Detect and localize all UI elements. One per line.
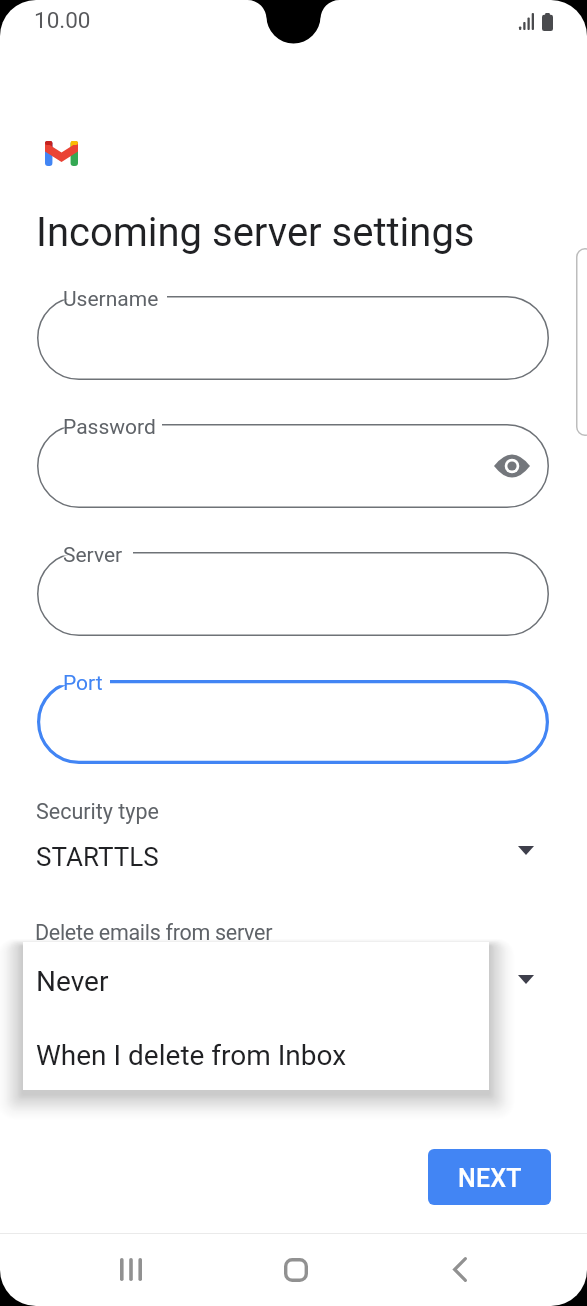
button[interactable]: When I delete from Inbox [23,1016,489,1090]
staticText: Username [63,287,159,312]
staticText: NEXT [458,1164,522,1193]
staticText: Never [36,965,109,998]
button[interactable]: NEXT [428,1149,551,1205]
staticText: Security type [36,799,160,824]
button[interactable]: Username [37,296,549,380]
button[interactable]: Recent apps [96,1233,166,1306]
staticText: Delete emails from server [35,920,273,945]
button[interactable]: Back [425,1233,495,1306]
button[interactable] [0,955,587,1007]
staticText: When I delete from Inbox [36,1039,347,1072]
staticText: Server [63,543,123,568]
staticText: 10.00 [34,7,91,33]
button[interactable]: Never [23,942,489,1016]
staticText: Port [63,671,103,696]
button[interactable]: Port [37,680,549,764]
staticText: Password [63,415,156,440]
button[interactable]: STARTTLS [0,832,587,884]
button[interactable]: Server [37,552,549,636]
button[interactable]: Home [261,1233,331,1306]
button[interactable]: Password [37,424,549,508]
button[interactable]: Show password [489,443,535,489]
staticText: Incoming server settings [36,209,475,256]
staticText: STARTTLS [36,842,159,872]
